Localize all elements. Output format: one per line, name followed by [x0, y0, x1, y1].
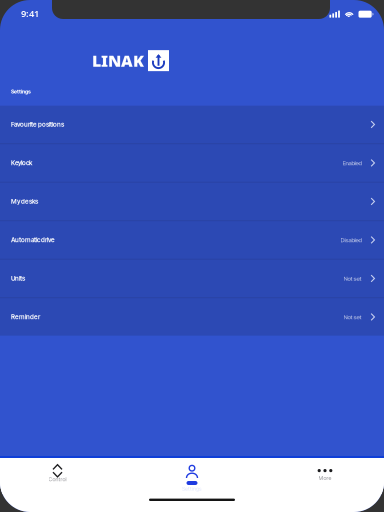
staticText: Control	[48, 476, 66, 483]
staticText: My desks	[11, 198, 38, 205]
staticText: Not set	[344, 313, 362, 321]
button[interactable]: More	[256, 458, 384, 494]
staticText: Reminder	[11, 313, 40, 321]
staticText: Units	[11, 275, 25, 282]
button[interactable]: Units	[0, 260, 384, 297]
button[interactable]: Reminder	[0, 298, 384, 336]
button[interactable]: Settings	[128, 458, 256, 494]
staticText: Disabled	[341, 236, 362, 244]
staticText: More	[318, 475, 331, 481]
staticText: Settings	[182, 486, 202, 492]
staticText: Not set	[344, 275, 362, 282]
button[interactable]: Control	[0, 458, 128, 494]
staticText: Automatic drive	[11, 236, 55, 244]
button[interactable]: My desks	[0, 183, 384, 220]
staticText: Enabled	[343, 159, 362, 167]
button[interactable]: Automatic drive	[0, 221, 384, 259]
button[interactable]: Favourite positions	[0, 106, 384, 143]
button[interactable]: Keylock	[0, 144, 384, 182]
staticText: Settings	[11, 88, 31, 95]
staticText: 9:41	[21, 7, 39, 20]
staticText: Keylock	[11, 159, 32, 167]
staticText: Favourite positions	[11, 121, 64, 128]
staticText: LINAK	[92, 50, 144, 71]
